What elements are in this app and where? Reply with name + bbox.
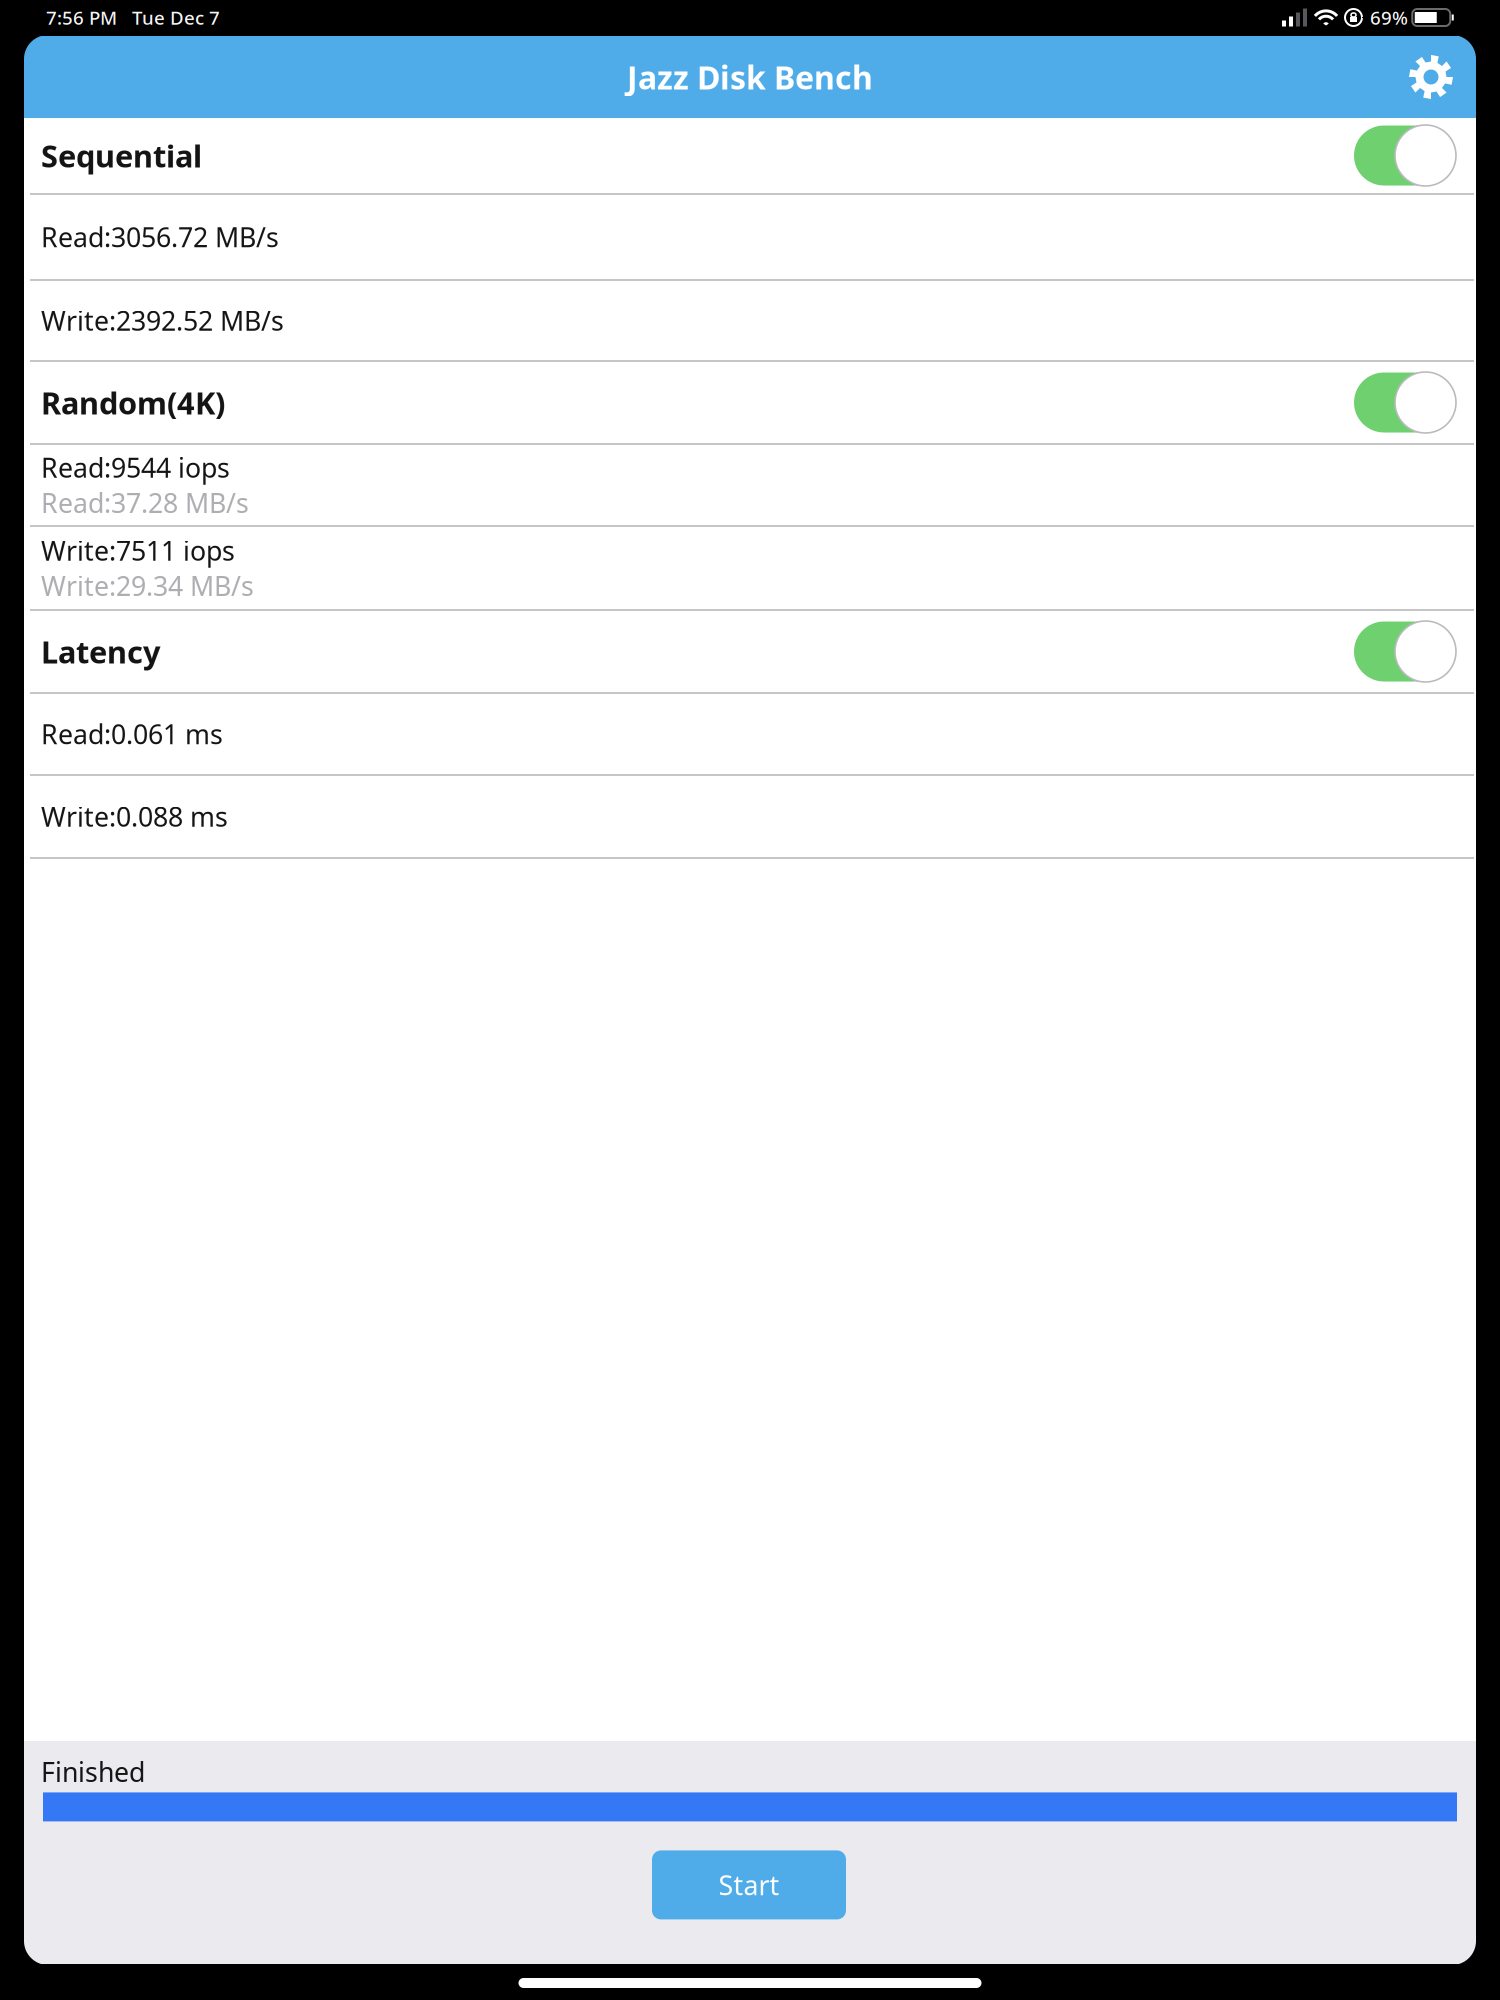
- button[interactable]: Random(4K): [24, 362, 1476, 443]
- staticText: Write:7511 iops: [41, 533, 235, 568]
- staticText: 69%: [1370, 5, 1408, 30]
- staticText: Tue Dec 7: [117, 5, 220, 30]
- staticText: Read:9544 iops: [41, 450, 230, 485]
- button[interactable]: Settings: [1409, 55, 1476, 99]
- staticText: 7:56 PM: [46, 5, 117, 30]
- staticText: Latency: [41, 631, 161, 672]
- staticText: Jazz Disk Bench: [627, 56, 873, 98]
- staticText: Write:29.34 MB/s: [41, 568, 254, 603]
- staticText: Random(4K): [41, 382, 225, 423]
- button[interactable]: Latency: [24, 611, 1476, 692]
- staticText: Finished: [41, 1754, 145, 1789]
- staticText: Write:2392.52 MB/s: [41, 303, 284, 338]
- staticText: Sequential: [41, 135, 202, 176]
- staticText: Start: [718, 1867, 779, 1903]
- staticText: Write:0.088 ms: [41, 799, 228, 834]
- button[interactable]: Start: [652, 1850, 846, 1919]
- staticText: Read:3056.72 MB/s: [41, 219, 279, 255]
- staticText: Read:37.28 MB/s: [41, 485, 249, 520]
- button[interactable]: Sequential: [24, 118, 1476, 193]
- staticText: Read:0.061 ms: [41, 716, 223, 752]
